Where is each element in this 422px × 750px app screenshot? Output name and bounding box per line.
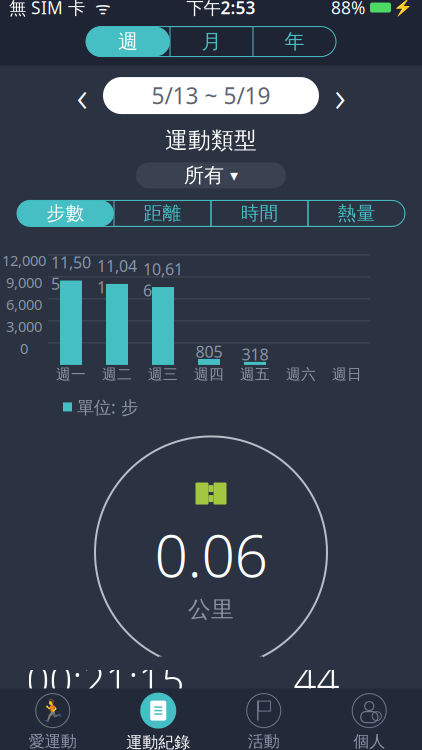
staticText: 下午2:53 <box>186 0 255 19</box>
button[interactable]: 🏃 <box>0 688 105 750</box>
staticText: 6,000 <box>6 295 42 314</box>
staticText: 週五 <box>240 365 270 383</box>
staticText: 公里 <box>188 595 234 623</box>
button[interactable]: 週 <box>86 27 170 57</box>
staticText: 11,505 <box>51 252 91 294</box>
button[interactable]: 所有 <box>136 162 286 188</box>
staticText: 個人 <box>353 732 385 750</box>
button[interactable]: 運動紀錄 <box>105 688 211 750</box>
staticText: 愛運動 <box>29 732 77 750</box>
staticText: 時間 <box>240 202 278 225</box>
button[interactable]: 月 <box>170 27 253 57</box>
button[interactable]: 時間 <box>211 200 308 226</box>
staticText: 所有 <box>184 163 224 188</box>
staticText: 12,000 <box>2 251 46 270</box>
button[interactable]: Previous week <box>61 74 103 118</box>
staticText: 週日 <box>332 365 362 383</box>
button[interactable]: 熱量 <box>308 200 405 226</box>
button[interactable]: 活動 <box>211 688 316 750</box>
staticText: 距離 <box>143 202 181 225</box>
button[interactable]: 年 <box>253 27 336 57</box>
staticText: 運動紀錄 <box>126 733 190 750</box>
staticText: 9,000 <box>6 273 42 292</box>
staticText: 0 <box>20 339 28 358</box>
staticText: 週二 <box>102 365 132 383</box>
staticText: 10,616 <box>143 258 183 301</box>
staticText: 週四 <box>194 365 224 383</box>
staticText: 無 SIM 卡 ᯤ <box>9 0 111 19</box>
staticText: 週三 <box>148 365 178 383</box>
staticText: 週六 <box>286 365 316 383</box>
staticText: 運動類型 <box>165 127 257 154</box>
button[interactable]: 步數 <box>17 200 114 226</box>
staticText: ‹ <box>76 67 87 124</box>
staticText: 3,000 <box>6 317 42 336</box>
staticText: 318 <box>241 344 268 365</box>
staticText: 活動 <box>248 732 280 750</box>
staticText: 44 <box>293 653 339 706</box>
staticText: 熱量 <box>337 202 375 225</box>
staticText: 🏃 <box>39 698 66 723</box>
staticText: 週 <box>118 29 138 54</box>
staticText: 88% <box>331 0 365 19</box>
staticText: 週一 <box>56 365 86 383</box>
staticText: 0.06 <box>154 516 267 593</box>
button[interactable]: Next week <box>319 74 361 118</box>
staticText: ⚡ <box>393 0 413 17</box>
staticText: 月 <box>201 29 221 54</box>
staticText: 單位: 步 <box>77 395 138 418</box>
staticText: › <box>334 67 345 124</box>
staticText: 年 <box>284 29 304 54</box>
staticText: 11,041 <box>97 255 137 298</box>
button[interactable]: 個人 <box>316 688 422 750</box>
staticText: 00:21:15 <box>26 653 184 706</box>
staticText: 步數 <box>46 202 84 225</box>
button[interactable]: 5/13 ~ 5/19 <box>103 77 319 114</box>
staticText: 805 <box>195 341 222 362</box>
staticText: ▾ <box>230 166 238 184</box>
button[interactable]: 距離 <box>114 200 211 226</box>
staticText: 5/13 ~ 5/19 <box>151 80 270 111</box>
